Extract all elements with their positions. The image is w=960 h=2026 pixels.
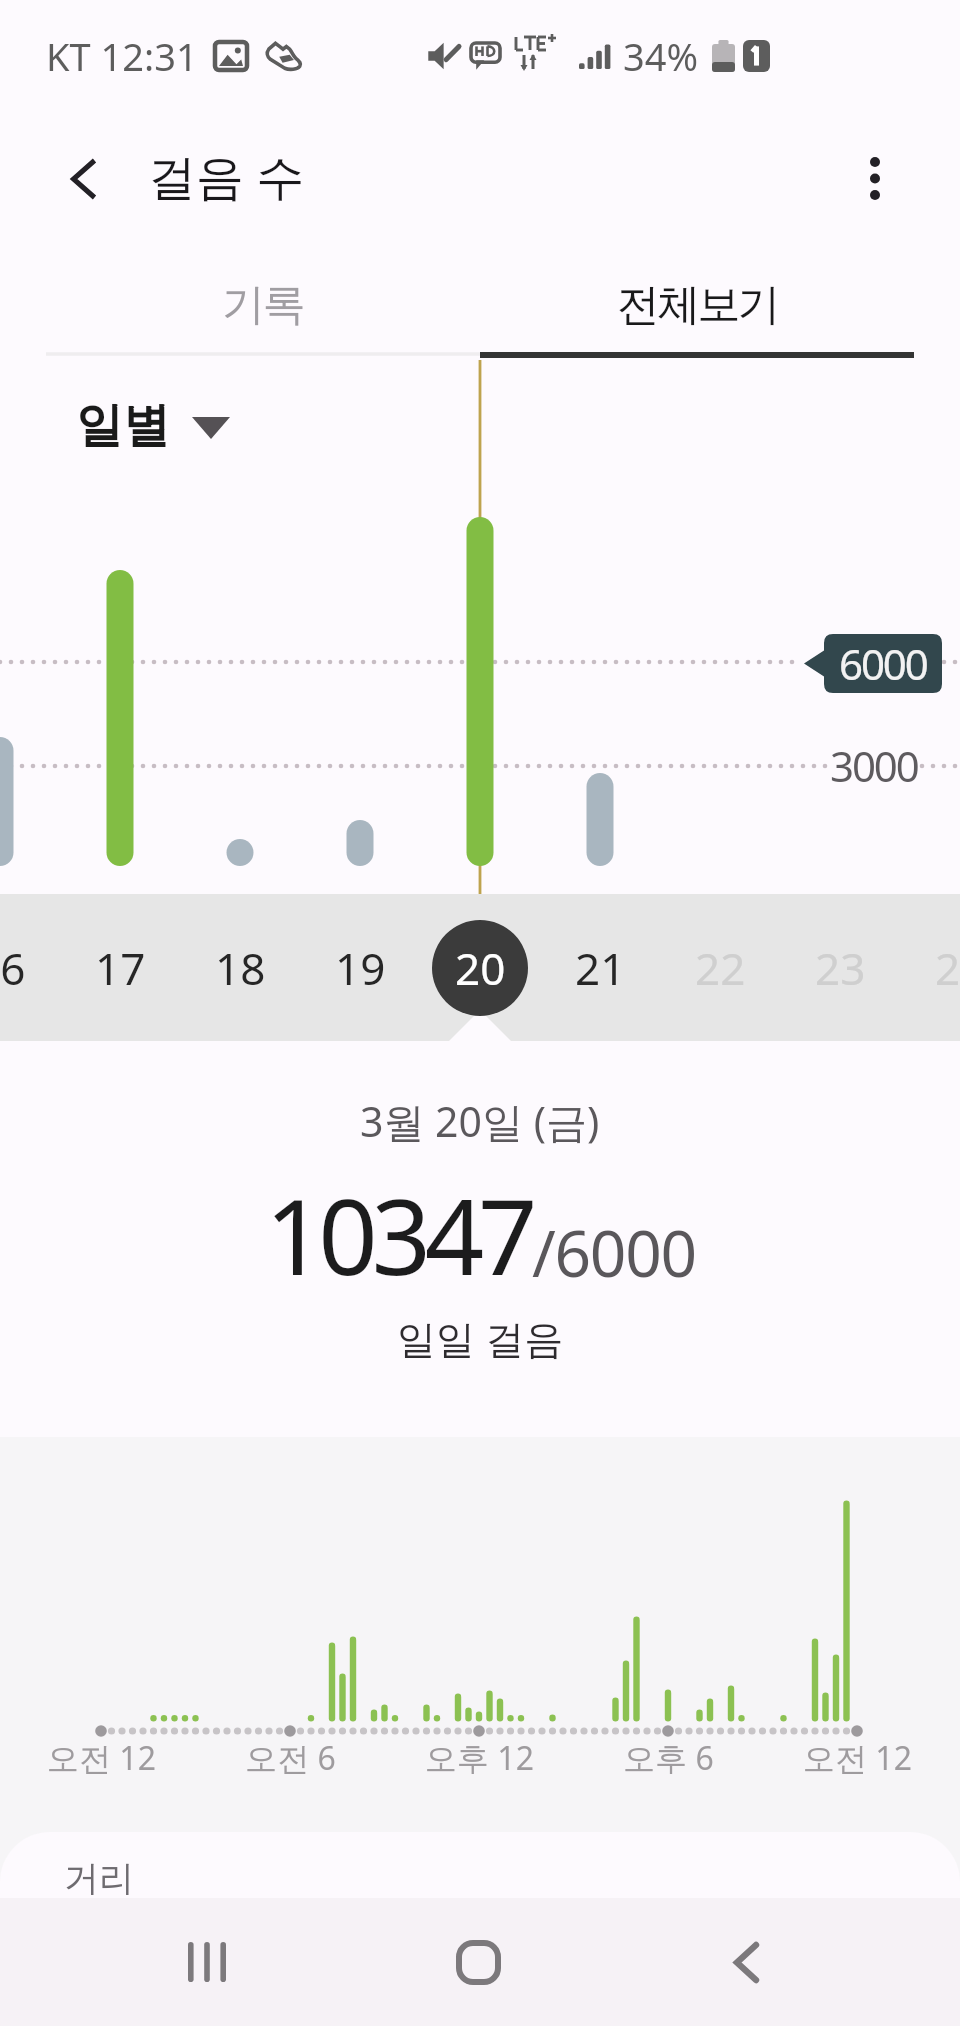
staticText: 오전 12 <box>47 1736 156 1780</box>
staticText: 오전 12 <box>803 1736 912 1780</box>
staticText: 거리 <box>64 1856 134 1898</box>
staticText: 19 <box>335 938 386 998</box>
staticText: 3월 20일 (금) <box>360 1093 600 1149</box>
button[interactable]: 기록 <box>46 255 480 354</box>
button[interactable]: 20 <box>432 920 528 1016</box>
staticText: 23 <box>815 938 866 998</box>
staticText: 21 <box>575 938 626 998</box>
staticText: 오후 6 <box>623 1736 714 1780</box>
staticText: 10347 <box>265 1164 532 1306</box>
button[interactable]: 17 <box>72 920 168 1016</box>
button[interactable]: 일별 <box>76 396 230 455</box>
button[interactable]: 18 <box>192 920 288 1016</box>
staticText: 6000 <box>839 635 927 692</box>
staticText: 16 <box>0 938 26 998</box>
button[interactable]: 24 <box>912 920 960 1016</box>
staticText: 22 <box>695 938 746 998</box>
staticText: 오전 6 <box>245 1736 336 1780</box>
button[interactable]: 16 <box>0 920 48 1016</box>
button[interactable]: Recent apps <box>129 1920 289 2004</box>
staticText: 20 <box>455 938 506 998</box>
staticText: 기록 <box>222 278 304 332</box>
staticText: 일일 걸음 <box>397 1311 564 1364</box>
button[interactable]: 거리 <box>0 1832 960 1898</box>
button[interactable]: 21 <box>552 920 648 1016</box>
staticText: 17 <box>95 938 146 998</box>
button[interactable]: Back <box>666 1920 826 2004</box>
button[interactable]: More options <box>815 107 935 250</box>
button[interactable]: 22 <box>672 920 768 1016</box>
staticText: 34% <box>623 30 699 82</box>
button[interactable]: 19 <box>312 920 408 1016</box>
staticText: 18 <box>215 938 266 998</box>
staticText: 3000 <box>830 737 918 794</box>
button[interactable]: 전체보기 <box>480 255 914 354</box>
staticText: 전체보기 <box>617 278 778 332</box>
staticText: 24 <box>935 938 960 998</box>
staticText: 일별 <box>76 396 170 455</box>
staticText: KT 12:31 <box>46 30 198 82</box>
staticText: 오후 12 <box>425 1736 534 1780</box>
button[interactable]: 23 <box>792 920 888 1016</box>
staticText: 걸음 수 <box>148 143 305 209</box>
button[interactable]: Home <box>398 1920 558 2004</box>
button[interactable]: Back <box>24 107 144 250</box>
staticText: /6000 <box>532 1209 696 1296</box>
